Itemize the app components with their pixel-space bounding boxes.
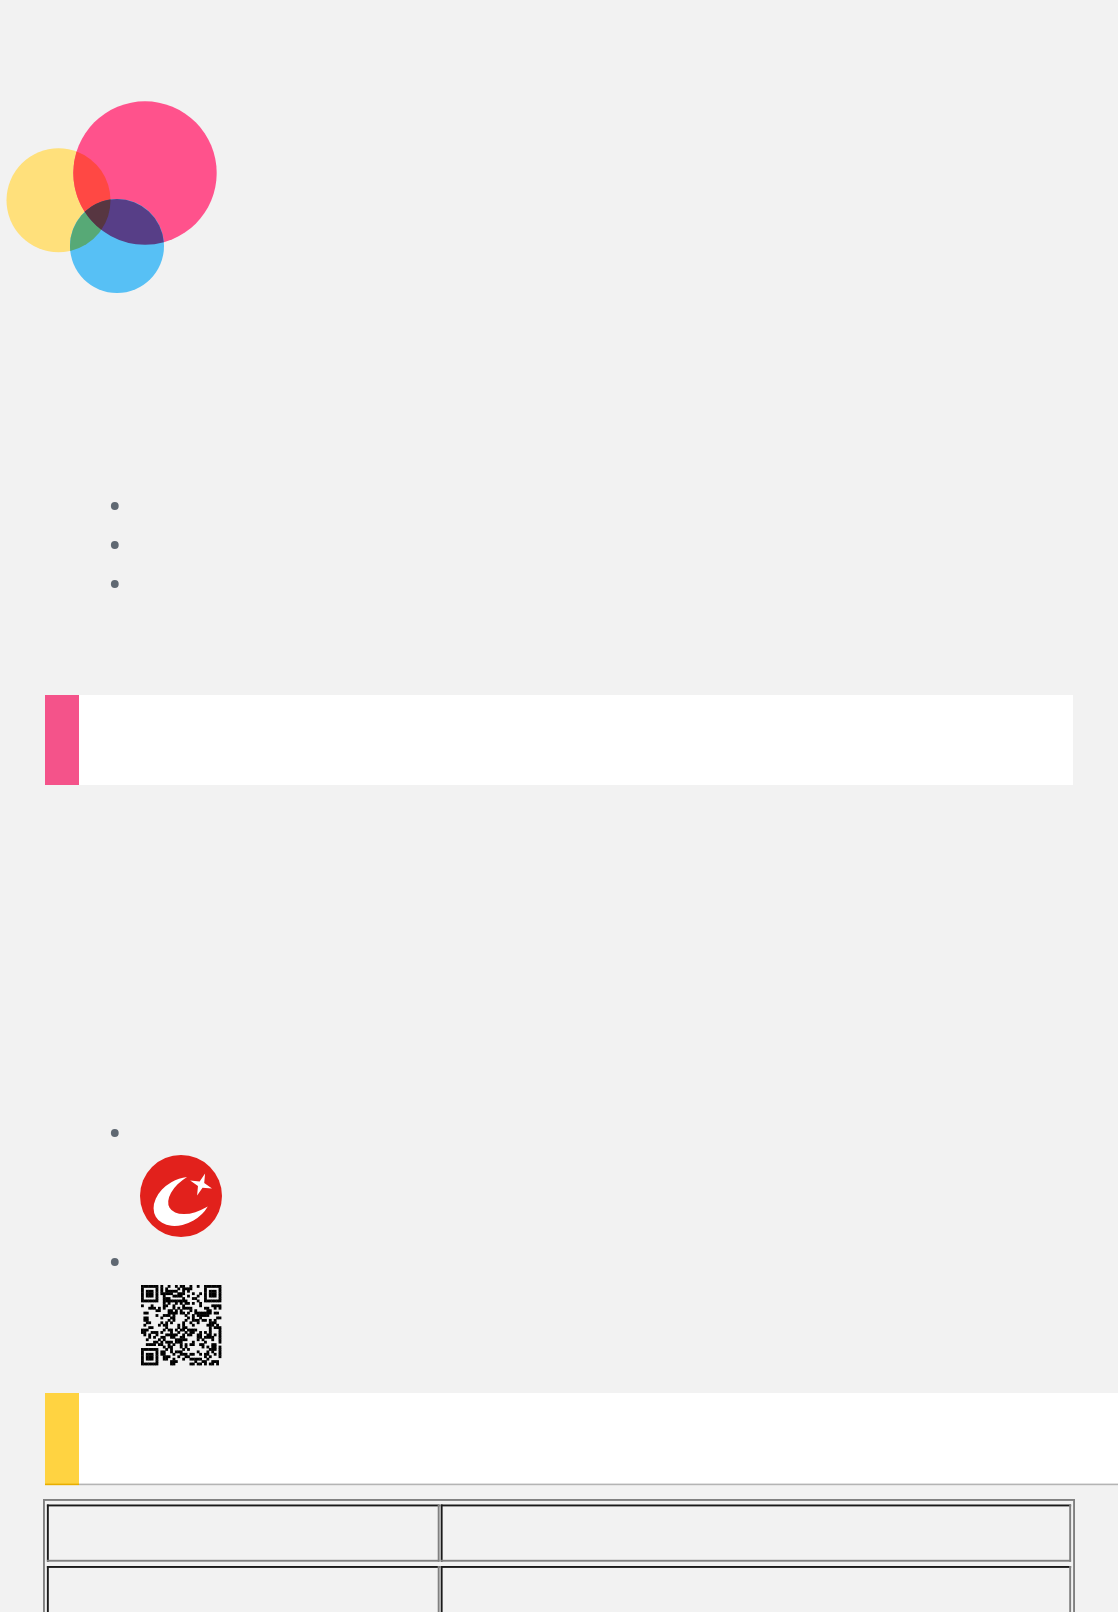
button[interactable] — [45, 695, 1073, 785]
button[interactable]: QR code — [141, 1285, 221, 1365]
button[interactable]: Product logo — [0, 90, 230, 305]
button[interactable]: Brand badge — [140, 1155, 222, 1237]
button[interactable] — [45, 1393, 1118, 1485]
